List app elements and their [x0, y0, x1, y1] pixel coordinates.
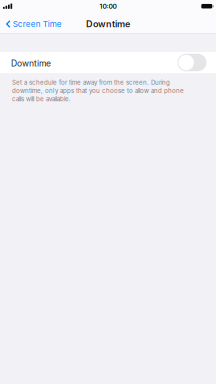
- button[interactable]: Screen Time: [0, 15, 66, 32]
- staticText: Downtime: [11, 58, 51, 68]
- staticText: 10:00: [99, 2, 116, 10]
- staticText: calls will be available.: [12, 95, 71, 103]
- staticText: downtime, only apps that you choose to a…: [12, 87, 184, 94]
- staticText: Screen Time: [13, 19, 62, 29]
- staticText: Downtime: [86, 18, 130, 29]
- staticText: Set a schedule for time away from the sc…: [12, 79, 170, 86]
- button[interactable]: Downtime: [0, 52, 216, 73]
